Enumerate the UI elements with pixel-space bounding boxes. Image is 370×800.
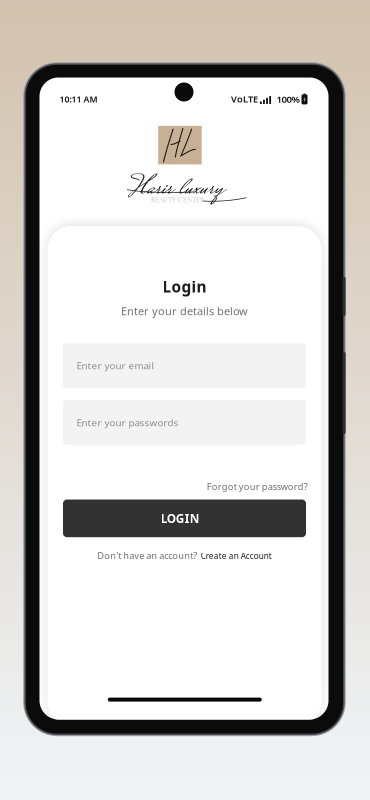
staticText: Don't have an account? (97, 549, 197, 561)
staticText: Enter your email (76, 359, 154, 372)
staticText: 100% (277, 92, 300, 106)
button[interactable]: Forgot your password? (63, 480, 306, 492)
button[interactable]: LOGIN (63, 499, 306, 537)
staticText: Enter your passwords (76, 416, 178, 429)
button[interactable]: Create an Account (201, 550, 272, 561)
staticText: Harir luxury (129, 168, 223, 211)
staticText: Enter your details below (121, 303, 248, 318)
staticText: BEAUTY CENTER (151, 196, 205, 204)
staticText: Login (162, 276, 206, 297)
staticText: VoLTE (231, 93, 258, 105)
staticText: Forgot your password? (207, 480, 308, 493)
staticText: 10:11 AM (59, 93, 97, 105)
staticText: LOGIN (161, 510, 200, 526)
staticText: Create an Account (201, 550, 272, 561)
